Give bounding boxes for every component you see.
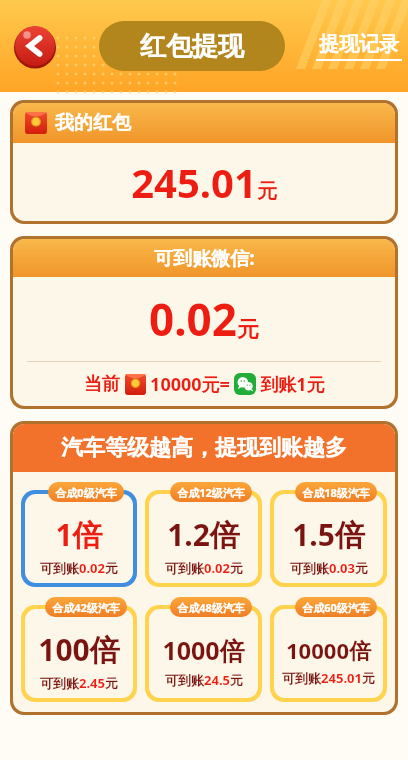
staticText: 可到账 [165, 672, 204, 688]
staticText: 元 [105, 675, 118, 691]
staticText: 红包提现 [140, 30, 244, 63]
staticText: 合成60级汽车 [302, 600, 370, 615]
staticText: 元 [355, 560, 368, 576]
staticText: 当前 [84, 373, 120, 396]
staticText: 元 [230, 560, 243, 576]
staticText: 100倍 [25, 629, 133, 670]
staticText: 1.5倍 [274, 514, 383, 555]
button[interactable]: 100倍 [21, 597, 137, 702]
staticText: 汽车等级越高，提现到账越多 [61, 434, 347, 462]
button[interactable]: 1000倍 [145, 597, 262, 702]
staticText: 可到账 [290, 560, 329, 576]
staticText: 可到账 [282, 670, 321, 686]
staticText: 0.02 [79, 559, 105, 577]
staticText: 到账1元 [260, 372, 325, 397]
staticText: 元 [257, 179, 277, 204]
staticText: 10000倍 [274, 635, 383, 665]
staticText: 合成42级汽车 [52, 600, 120, 615]
staticText: 合成18级汽车 [302, 485, 370, 500]
staticText: 提现记录 [319, 32, 399, 57]
staticText: 10000元= [150, 372, 230, 397]
staticText: 元 [105, 560, 118, 576]
staticText: 0.02 [149, 289, 237, 349]
staticText: 245.01 [321, 669, 362, 687]
staticText: 元 [362, 670, 375, 686]
staticText: 可到账 [165, 560, 204, 576]
button[interactable]: 1倍 [21, 482, 137, 587]
button[interactable]: 10000倍 [270, 597, 387, 702]
staticText: 合成12级汽车 [177, 485, 245, 500]
staticText: 0.02 [204, 559, 230, 577]
staticText: 2.45 [79, 674, 105, 692]
staticText: 0.03 [329, 559, 355, 577]
button[interactable]: 1.2倍 [145, 482, 262, 587]
staticText: 可到账微信: [154, 245, 255, 271]
staticText: 可到账 [40, 675, 79, 691]
button[interactable]: 1.5倍 [270, 482, 387, 587]
staticText: 元 [230, 672, 243, 688]
staticText: 1000倍 [149, 633, 258, 667]
staticText: 元 [237, 316, 259, 344]
staticText: 1.2倍 [149, 514, 258, 555]
staticText: 245.01 [131, 155, 257, 209]
button[interactable]: 提现记录 [316, 32, 402, 61]
staticText: 24.5 [204, 671, 230, 689]
staticText: 可到账 [40, 560, 79, 576]
staticText: 合成48级汽车 [177, 600, 245, 615]
button[interactable]: Back [14, 25, 56, 67]
staticText: 我的红包 [55, 111, 131, 135]
staticText: 1倍 [25, 514, 133, 555]
staticText: 合成0级汽车 [55, 485, 117, 500]
